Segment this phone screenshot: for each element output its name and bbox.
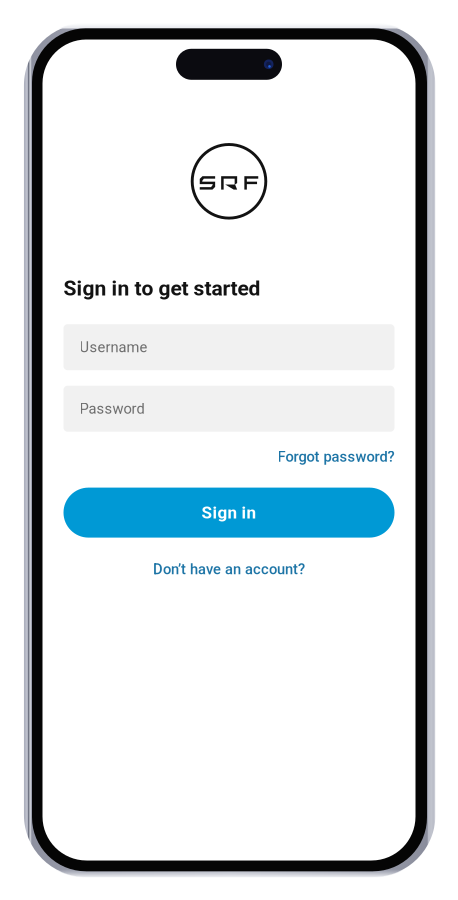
staticText: Forgot password?: [277, 448, 394, 465]
staticText: Don’t have an account?: [153, 561, 305, 578]
staticText: Sign in to get started: [63, 276, 260, 301]
staticText: Username: [79, 339, 147, 356]
button[interactable]: Don’t have an account?: [63, 560, 394, 578]
button[interactable]: Forgot password?: [63, 448, 394, 466]
button[interactable]: Sign in: [63, 488, 394, 538]
staticText: Sign in: [201, 503, 256, 523]
staticText: Password: [79, 400, 144, 417]
